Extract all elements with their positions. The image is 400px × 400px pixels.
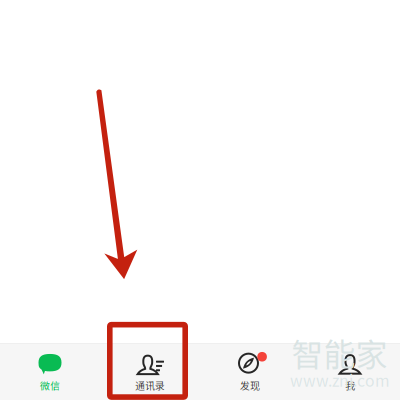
button[interactable]: 发现 <box>200 344 300 400</box>
button[interactable]: 通讯录 <box>100 344 200 400</box>
staticText: 微信 <box>40 378 60 392</box>
staticText: 智能家 <box>291 329 387 376</box>
staticText: 我 <box>345 378 355 392</box>
staticText: 通讯录 <box>135 378 165 392</box>
button[interactable]: 我 <box>300 344 400 400</box>
button[interactable]: 微信 <box>0 344 100 400</box>
staticText: www.znj.com <box>290 368 390 391</box>
staticText: 发现 <box>240 378 260 392</box>
